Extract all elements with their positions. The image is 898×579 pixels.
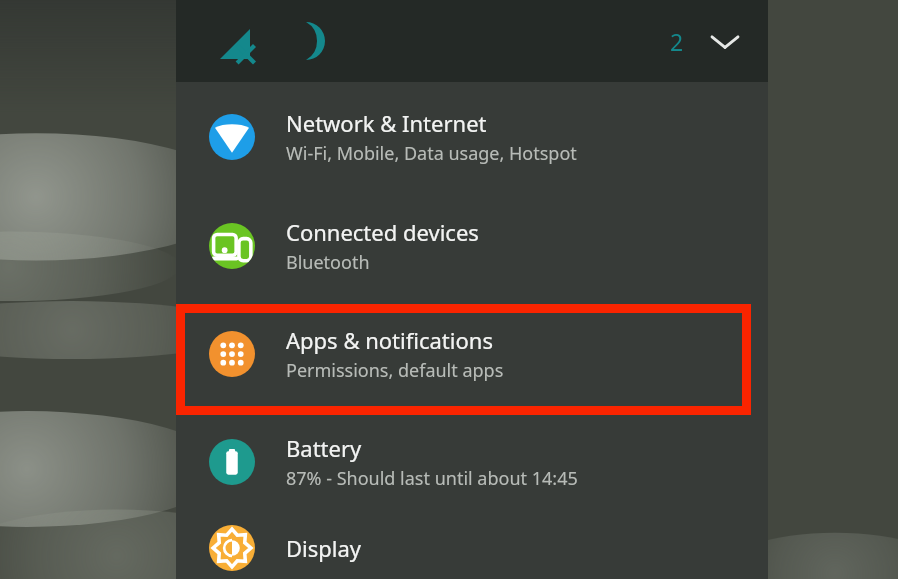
staticText: 87% - Should last until about 14:45 xyxy=(286,466,578,491)
button[interactable]: Connected devices xyxy=(176,192,768,300)
button[interactable]: Display xyxy=(176,516,768,579)
button[interactable]: Do not disturb xyxy=(284,19,328,63)
button[interactable]: Battery xyxy=(176,408,768,516)
staticText: Wi-Fi, Mobile, Data usage, Hotspot xyxy=(286,141,577,166)
button[interactable]: Expand quick settings xyxy=(703,19,747,63)
staticText: Network & Internet xyxy=(286,108,487,138)
staticText: Battery xyxy=(286,433,362,463)
button[interactable]: Apps & notifications xyxy=(176,300,768,408)
staticText: Bluetooth xyxy=(286,250,370,275)
button[interactable]: No signal xyxy=(214,19,258,63)
staticText: Display xyxy=(286,533,362,563)
staticText: Permissions, default apps xyxy=(286,358,504,383)
staticText: Connected devices xyxy=(286,217,479,247)
button[interactable]: Network & Internet xyxy=(176,82,768,192)
staticText: Apps & notifications xyxy=(286,325,493,355)
staticText: 2 xyxy=(670,26,684,57)
